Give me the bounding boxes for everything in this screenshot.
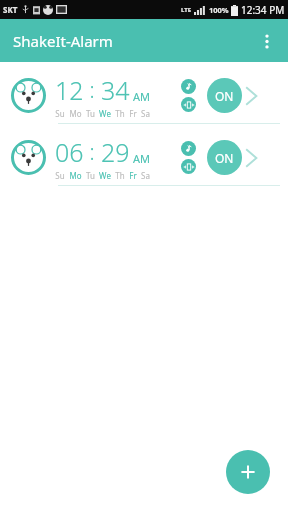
- staticText: Su: [55, 108, 65, 119]
- button[interactable]: Alarm icon: [0, 68, 288, 130]
- button[interactable]: Vibration: [181, 159, 196, 174]
- button[interactable]: Alarm sound: [181, 79, 196, 94]
- staticText: 29: [101, 135, 130, 169]
- staticText: 12:34 PM: [241, 3, 285, 17]
- staticText: Mo: [69, 108, 82, 119]
- staticText: ON: [215, 88, 234, 104]
- staticText: SKT: [3, 4, 18, 15]
- button[interactable]: Alarm icon: [0, 130, 288, 192]
- button[interactable]: Add alarm: [226, 450, 270, 494]
- other: Alarm icon: [11, 78, 46, 113]
- staticText: 06: [55, 135, 84, 169]
- staticText: 34: [101, 73, 130, 107]
- staticText: ShakeIt-Alarm: [13, 31, 113, 51]
- staticText: LTE: [181, 6, 192, 14]
- staticText: 100%: [209, 5, 229, 15]
- button[interactable]: Vibration: [181, 97, 196, 112]
- button[interactable]: More options: [254, 28, 280, 54]
- staticText: Sa: [141, 108, 150, 119]
- staticText: ON: [215, 150, 234, 166]
- staticText: Mo: [69, 170, 82, 181]
- staticText: :: [84, 76, 101, 105]
- staticText: 12: [55, 73, 84, 107]
- staticText: We: [99, 108, 111, 119]
- button[interactable]: ON: [207, 140, 242, 175]
- staticText: AM: [133, 89, 151, 104]
- staticText: Th: [115, 170, 125, 181]
- staticText: Tu: [86, 170, 95, 181]
- staticText: Th: [115, 108, 125, 119]
- staticText: Sa: [141, 170, 150, 181]
- staticText: We: [99, 170, 111, 181]
- staticText: Fr: [129, 170, 137, 181]
- staticText: Su: [55, 170, 65, 181]
- button[interactable]: Alarm sound: [181, 141, 196, 156]
- staticText: :: [84, 138, 101, 167]
- staticText: Tu: [86, 108, 95, 119]
- staticText: AM: [133, 151, 151, 166]
- other: Alarm icon: [11, 140, 46, 175]
- button[interactable]: ON: [207, 78, 242, 113]
- staticText: Fr: [129, 108, 137, 119]
